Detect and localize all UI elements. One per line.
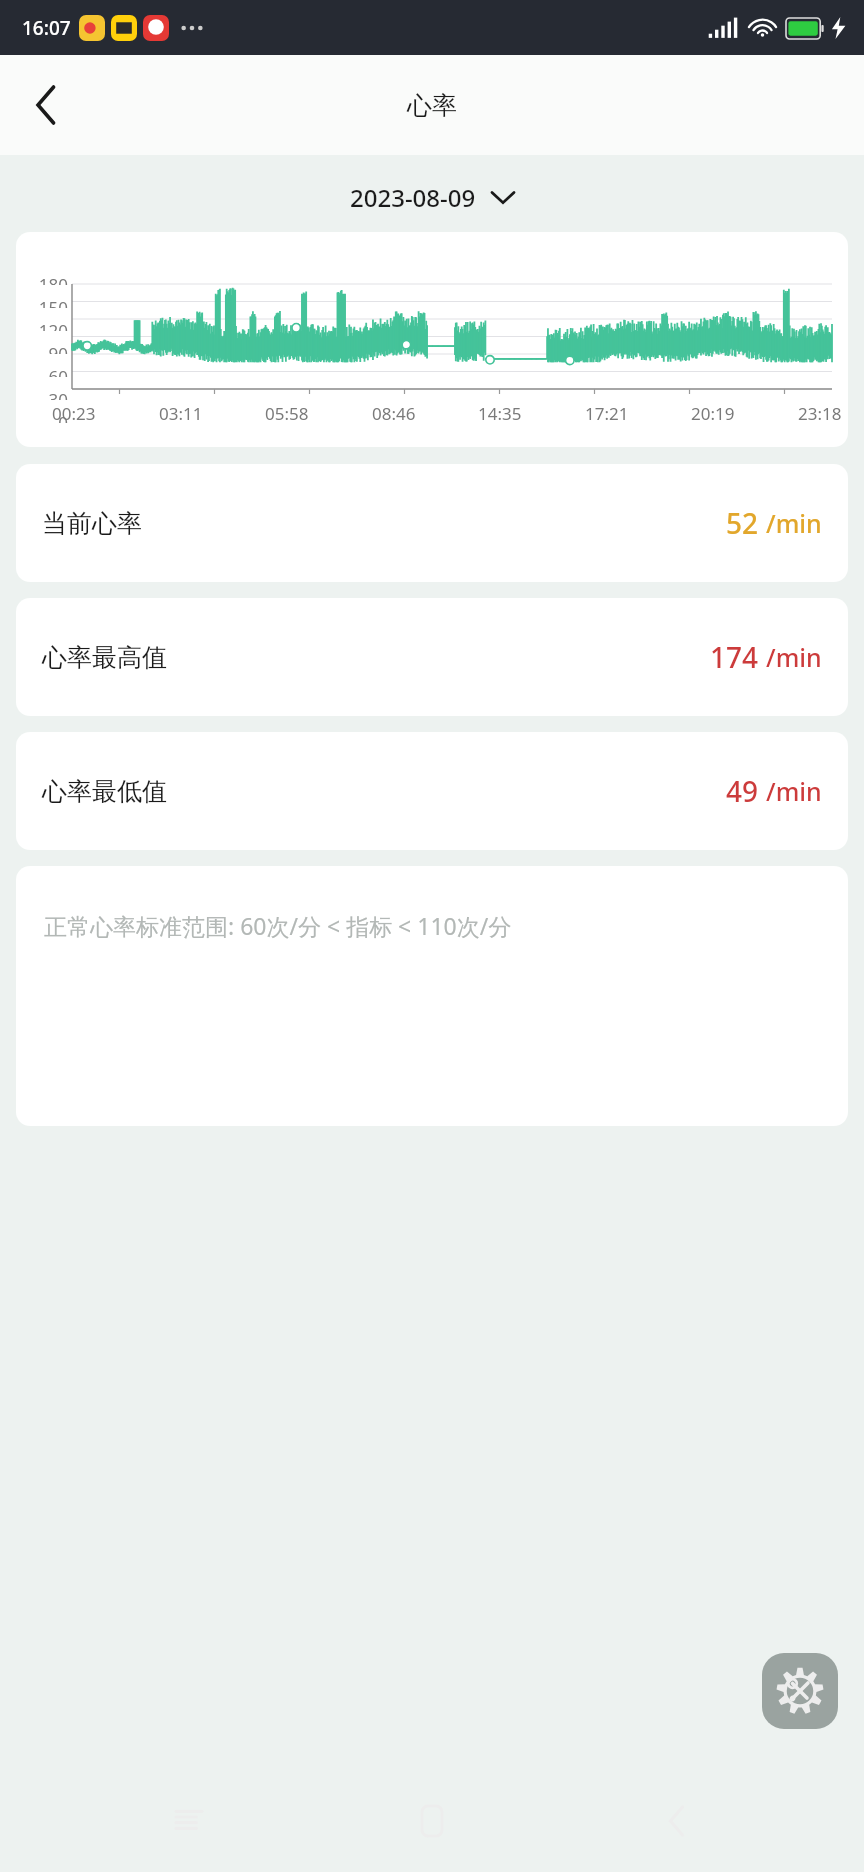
- staticText: /min: [766, 640, 822, 674]
- staticText: 0: [58, 411, 68, 423]
- staticText: 52: [726, 504, 759, 542]
- staticText: /min: [766, 506, 822, 540]
- staticText: 心率: [407, 90, 457, 121]
- staticText: 17:21: [585, 402, 629, 425]
- staticText: 正常心率标准范围: 60次/分 < 指标 < 110次/分: [44, 910, 512, 941]
- staticText: 05:58: [265, 402, 309, 425]
- staticText: 49: [726, 772, 759, 810]
- staticText: 00:23: [52, 402, 96, 425]
- staticText: 120: [38, 319, 68, 331]
- staticText: 03:11: [159, 402, 203, 425]
- staticText: 180: [38, 273, 68, 285]
- staticText: 14:35: [478, 402, 522, 425]
- staticText: 150: [38, 296, 68, 308]
- staticText: 174: [710, 638, 759, 676]
- staticText: 60: [48, 365, 68, 377]
- staticText: 当前心率: [42, 508, 142, 539]
- staticText: 90: [48, 342, 68, 354]
- staticText: 20:19: [691, 402, 735, 425]
- button[interactable]: 当前心率: [16, 464, 848, 582]
- staticText: /min: [766, 774, 822, 808]
- staticText: 心率最低值: [42, 776, 167, 807]
- staticText: 心率最高值: [42, 642, 167, 673]
- staticText: 08:46: [372, 402, 416, 425]
- staticText: 2023-08-09: [350, 181, 476, 214]
- staticText: 16:07: [22, 15, 71, 41]
- button[interactable]: 心率最低值: [16, 732, 848, 850]
- button[interactable]: Back: [14, 73, 78, 137]
- staticText: 30: [48, 388, 68, 400]
- button[interactable]: 2023-08-09: [0, 181, 864, 214]
- staticText: 23:18: [798, 402, 842, 425]
- button[interactable]: Settings: [762, 1653, 838, 1729]
- button[interactable]: 心率最高值: [16, 598, 848, 716]
